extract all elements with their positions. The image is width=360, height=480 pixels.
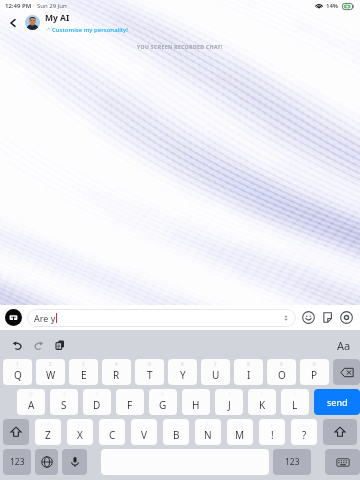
- button[interactable]: .: [291, 419, 317, 445]
- staticText: Sun 29 Jun: [37, 2, 67, 10]
- button[interactable]: Backspace: [333, 359, 360, 385]
- button[interactable]: Are y: [34, 309, 291, 327]
- staticText: N: [204, 428, 212, 442]
- staticText: ": [79, 421, 81, 427]
- button[interactable]: Paste: [51, 336, 69, 354]
- button[interactable]: 8: [234, 359, 263, 385]
- button[interactable]: Redo: [29, 336, 47, 354]
- button[interactable]: Numbers: [3, 449, 31, 475]
- button[interactable]: -: [182, 389, 210, 415]
- staticText: Q: [14, 368, 22, 382]
- button[interactable]: Numbers: [273, 449, 311, 475]
- button[interactable]: 1: [3, 359, 32, 385]
- staticText: X: [77, 428, 83, 442]
- button[interactable]: (: [248, 389, 276, 415]
- staticText: B: [173, 428, 180, 442]
- button[interactable]: Aa: [337, 336, 351, 354]
- staticText: L: [292, 398, 298, 412]
- button[interactable]: +: [215, 389, 243, 415]
- staticText: 5: [148, 361, 151, 367]
- button[interactable]: ?: [227, 419, 253, 445]
- button[interactable]: 0: [300, 359, 329, 385]
- staticText: 6: [181, 361, 184, 367]
- button[interactable]: Back: [4, 14, 22, 32]
- staticText: 9: [280, 361, 283, 367]
- button[interactable]: ': [99, 419, 125, 445]
- staticText: 14%: [326, 2, 339, 10]
- staticText: ?: [302, 428, 307, 442]
- staticText: Y: [180, 368, 186, 382]
- staticText: Aa: [337, 338, 351, 353]
- staticText: !: [207, 421, 209, 427]
- button[interactable]: 2: [36, 359, 65, 385]
- button[interactable]: Voice input: [62, 449, 87, 475]
- staticText: C: [109, 428, 116, 442]
- staticText: send: [327, 396, 348, 408]
- staticText: (: [261, 391, 263, 397]
- button[interactable]: ": [67, 419, 93, 445]
- button[interactable]: *: [35, 419, 61, 445]
- button[interactable]: !: [195, 419, 221, 445]
- button[interactable]: Shift: [323, 419, 357, 445]
- button[interactable]: 9: [267, 359, 296, 385]
- button[interactable]: Shift: [3, 419, 29, 445]
- button[interactable]: ,: [259, 419, 285, 445]
- button[interactable]: 7: [201, 359, 230, 385]
- staticText: R: [113, 368, 120, 382]
- staticText: F: [127, 398, 133, 412]
- staticText: 4: [115, 361, 118, 367]
- staticText: *: [47, 421, 50, 427]
- button[interactable]: Expand: [281, 313, 291, 323]
- staticText: D: [93, 398, 101, 412]
- staticText: 123: [10, 456, 25, 468]
- button[interactable]: ): [281, 389, 309, 415]
- staticText: W: [46, 368, 56, 382]
- button[interactable]: $: [83, 389, 111, 415]
- staticText: Are y: [34, 312, 56, 324]
- button[interactable]: 5: [135, 359, 164, 385]
- button[interactable]: Lens: [338, 309, 355, 326]
- button[interactable]: 3: [69, 359, 98, 385]
- staticText: O: [278, 368, 286, 382]
- staticText: 2: [49, 361, 52, 367]
- staticText: YOU SCREEN RECORDED CHAT!: [137, 44, 223, 51]
- staticText: ?: [239, 421, 241, 427]
- staticText: J: [228, 398, 231, 412]
- staticText: E: [81, 368, 87, 382]
- staticText: #: [63, 391, 66, 397]
- staticText: 3: [82, 361, 85, 367]
- button[interactable]: send: [314, 389, 360, 415]
- staticText: U: [212, 368, 220, 382]
- staticText: T: [147, 368, 153, 382]
- staticText: H: [192, 398, 200, 412]
- button[interactable]: 6: [168, 359, 197, 385]
- button[interactable]: ;: [163, 419, 189, 445]
- button[interactable]: #: [50, 389, 78, 415]
- button[interactable]: Emoji: [300, 309, 317, 326]
- staticText: ,: [271, 421, 273, 427]
- staticText: &: [161, 391, 165, 397]
- button[interactable]: Undo: [8, 336, 26, 354]
- button[interactable]: @: [17, 389, 45, 415]
- staticText: V: [141, 428, 147, 442]
- staticText: S: [61, 398, 67, 412]
- button[interactable]: Hide keyboard: [325, 449, 360, 475]
- staticText: K: [259, 398, 266, 412]
- button[interactable]: Language: [35, 449, 58, 475]
- staticText: A: [28, 398, 35, 412]
- staticText: +: [228, 391, 231, 397]
- staticText: 1: [16, 361, 19, 367]
- staticText: 0: [313, 361, 316, 367]
- button[interactable]: :: [131, 419, 157, 445]
- button[interactable]: Stickers: [319, 309, 336, 326]
- button[interactable]: _: [116, 389, 144, 415]
- button[interactable]: 4: [102, 359, 131, 385]
- button[interactable]: Camera: [5, 309, 22, 326]
- staticText: P: [311, 368, 318, 382]
- button[interactable]: &: [149, 389, 177, 415]
